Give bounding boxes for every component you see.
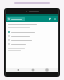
button[interactable] xyxy=(7,17,25,21)
button[interactable]: Recents xyxy=(44,68,49,72)
button[interactable] xyxy=(8,34,56,38)
button[interactable]: Home xyxy=(30,68,35,72)
button[interactable]: Back xyxy=(15,68,20,72)
button[interactable] xyxy=(8,42,56,46)
button[interactable] xyxy=(8,38,56,42)
button[interactable] xyxy=(8,30,56,34)
button[interactable]: More options xyxy=(53,17,57,21)
button[interactable]: Sort xyxy=(48,17,52,21)
